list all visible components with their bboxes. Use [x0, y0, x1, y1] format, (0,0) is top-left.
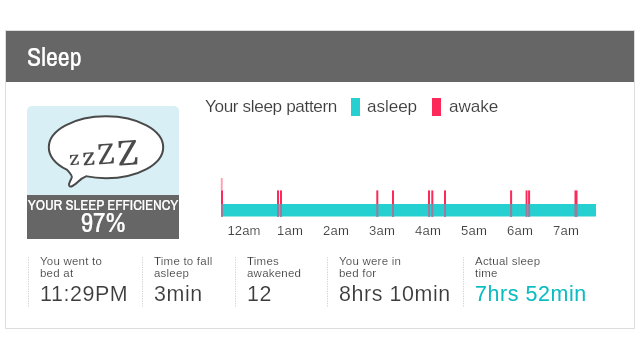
staticText: Actual sleep — [475, 255, 541, 268]
staticText: You went to — [40, 255, 103, 268]
staticText: 11:29PM — [40, 282, 129, 306]
staticText: awake — [449, 97, 499, 116]
staticText: asleep — [367, 97, 418, 116]
staticText: Times — [247, 255, 279, 268]
staticText: 12am — [219, 223, 269, 238]
staticText: 97% — [27, 204, 179, 241]
button[interactable] — [248, 255, 354, 307]
staticText: bed at — [40, 267, 74, 280]
staticText: time — [475, 267, 498, 280]
staticText: Your sleep pattern — [205, 97, 337, 116]
staticText: 3min — [154, 282, 203, 306]
staticText: 6am — [495, 223, 545, 238]
staticText: Z — [116, 131, 140, 175]
staticText: 7am — [541, 223, 591, 238]
staticText: awakened — [247, 267, 302, 280]
staticText: z — [81, 140, 97, 172]
staticText: z — [68, 145, 81, 171]
staticText: 8hrs 10min — [339, 282, 451, 306]
staticText: asleep — [154, 267, 190, 280]
staticText: 1am — [265, 223, 315, 238]
button[interactable] — [155, 255, 261, 307]
staticText: 4am — [403, 223, 453, 238]
staticText: Z — [96, 136, 116, 172]
button[interactable] — [6, 31, 634, 82]
staticText: 12 — [247, 282, 272, 306]
button[interactable] — [27, 106, 179, 239]
staticText: You were in — [339, 255, 402, 268]
staticText: bed for — [339, 267, 377, 280]
button[interactable] — [476, 255, 582, 307]
staticText: Sleep — [27, 39, 82, 74]
button[interactable] — [340, 255, 446, 307]
staticText: 2am — [311, 223, 361, 238]
staticText: 5am — [449, 223, 499, 238]
button[interactable] — [41, 255, 147, 307]
staticText: 7hrs 52min — [475, 282, 587, 306]
staticText: Time to fall — [154, 255, 213, 268]
staticText: YOUR SLEEP EFFICIENCY — [26, 195, 180, 215]
staticText: 3am — [357, 223, 407, 238]
